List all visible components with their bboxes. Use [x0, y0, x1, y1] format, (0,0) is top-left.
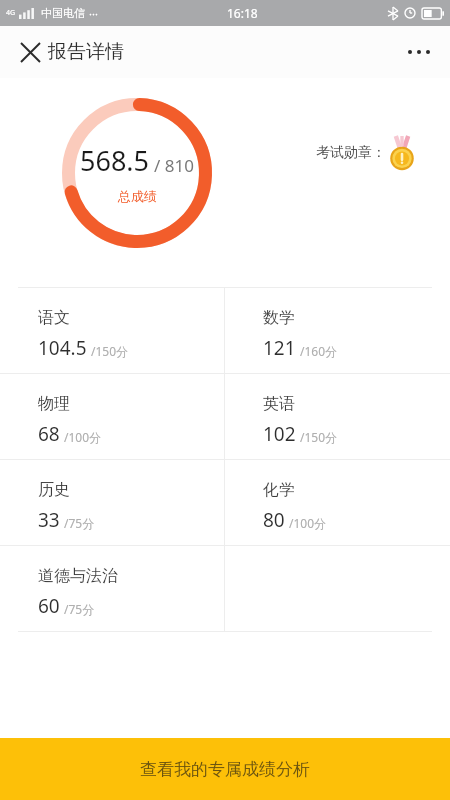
- staticText: 4G: [6, 8, 16, 18]
- button[interactable]: 道德与法治: [0, 546, 224, 631]
- button[interactable]: Close: [8, 30, 52, 74]
- button[interactable]: 语文: [0, 288, 224, 373]
- staticText: /150分: [91, 343, 129, 359]
- staticText: 考试勋章：: [316, 144, 386, 162]
- staticText: 68: [38, 421, 60, 447]
- staticText: 568.5: [80, 142, 150, 179]
- staticText: /100分: [289, 515, 327, 531]
- button[interactable]: 查看我的专属成绩分析: [0, 738, 450, 800]
- staticText: 查看我的专属成绩分析: [140, 759, 310, 780]
- button[interactable]: 历史: [0, 460, 224, 545]
- staticText: 语文: [38, 308, 70, 328]
- button[interactable]: 化学: [225, 460, 450, 545]
- staticText: /75分: [64, 601, 95, 617]
- staticText: 数学: [263, 308, 295, 328]
- button[interactable]: 物理: [0, 374, 224, 459]
- staticText: 16:18: [227, 5, 258, 21]
- staticText: 102: [263, 421, 296, 447]
- staticText: 104.5: [38, 335, 87, 361]
- staticText: 60: [38, 593, 60, 619]
- button[interactable]: 数学: [225, 288, 450, 373]
- staticText: /100分: [64, 429, 102, 445]
- staticText: /160分: [300, 343, 338, 359]
- staticText: 中国电信: [41, 6, 85, 20]
- staticText: 总成绩: [118, 188, 157, 204]
- staticText: 33: [38, 507, 60, 533]
- button[interactable]: 英语: [225, 374, 450, 459]
- staticText: 80: [263, 507, 285, 533]
- staticText: 物理: [38, 394, 70, 414]
- staticText: ···: [89, 6, 98, 21]
- staticText: 报告详情: [48, 40, 124, 64]
- staticText: / 810: [154, 154, 194, 177]
- staticText: 化学: [263, 480, 295, 500]
- staticText: 历史: [38, 480, 70, 500]
- staticText: 121: [263, 335, 296, 361]
- button[interactable]: More options: [396, 29, 442, 75]
- staticText: 道德与法治: [38, 566, 118, 586]
- staticText: 英语: [263, 394, 295, 414]
- staticText: /150分: [300, 429, 338, 445]
- staticText: /75分: [64, 515, 95, 531]
